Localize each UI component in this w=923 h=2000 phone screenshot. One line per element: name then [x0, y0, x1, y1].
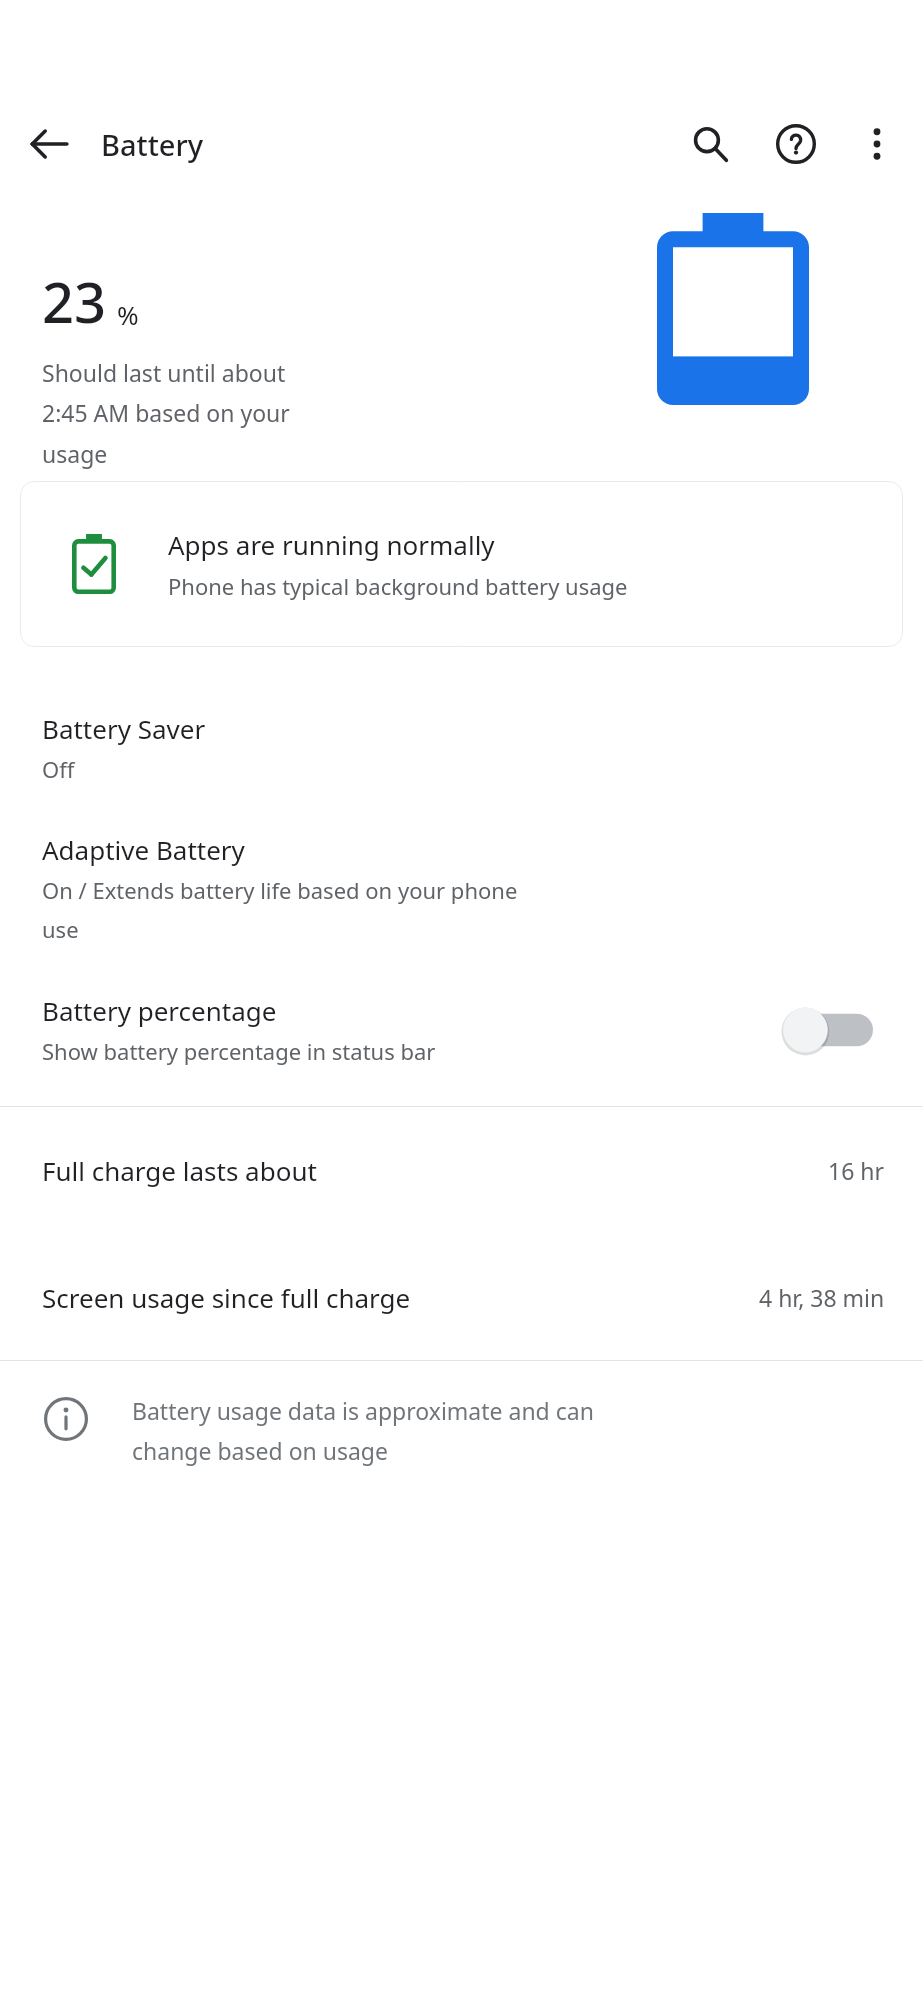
staticText: Battery usage data is approximate and ca…	[132, 1395, 594, 1467]
button[interactable]: Battery Saver	[0, 689, 923, 810]
staticText: 4 hr, 38 min	[759, 1282, 885, 1313]
button[interactable]: Screen usage since full charge	[0, 1234, 923, 1360]
staticText: Full charge lasts about	[42, 1153, 317, 1188]
button[interactable]: Back	[0, 97, 98, 191]
button[interactable]: Help	[753, 97, 839, 191]
staticText: Apps are running normally	[168, 527, 495, 562]
staticText: On / Extends battery life based on your …	[42, 875, 518, 945]
staticText: Battery	[101, 125, 203, 164]
button[interactable]: Battery percentage toggle	[781, 1002, 873, 1058]
staticText: 16 hr	[828, 1155, 885, 1186]
staticText: Show battery percentage in status bar	[42, 1036, 436, 1066]
staticText: %	[117, 297, 139, 332]
staticText: Battery percentage	[42, 993, 277, 1028]
staticText: Battery Saver	[42, 711, 206, 746]
staticText: Off	[42, 754, 75, 784]
staticText: Should last until about 2:45 AM based on…	[42, 357, 290, 470]
button[interactable]: Search	[667, 97, 753, 191]
staticText: Phone has typical background battery usa…	[168, 571, 628, 601]
button[interactable]: Full charge lasts about	[0, 1107, 923, 1233]
button[interactable]: More options	[839, 97, 915, 191]
staticText: Screen usage since full charge	[42, 1280, 411, 1315]
button[interactable]: Battery percentage	[0, 971, 923, 1092]
button[interactable]: Adaptive Battery	[0, 810, 923, 971]
staticText: Adaptive Battery	[42, 832, 245, 867]
staticText: 23	[42, 263, 107, 339]
button[interactable]: Apps are running normally	[20, 481, 903, 647]
